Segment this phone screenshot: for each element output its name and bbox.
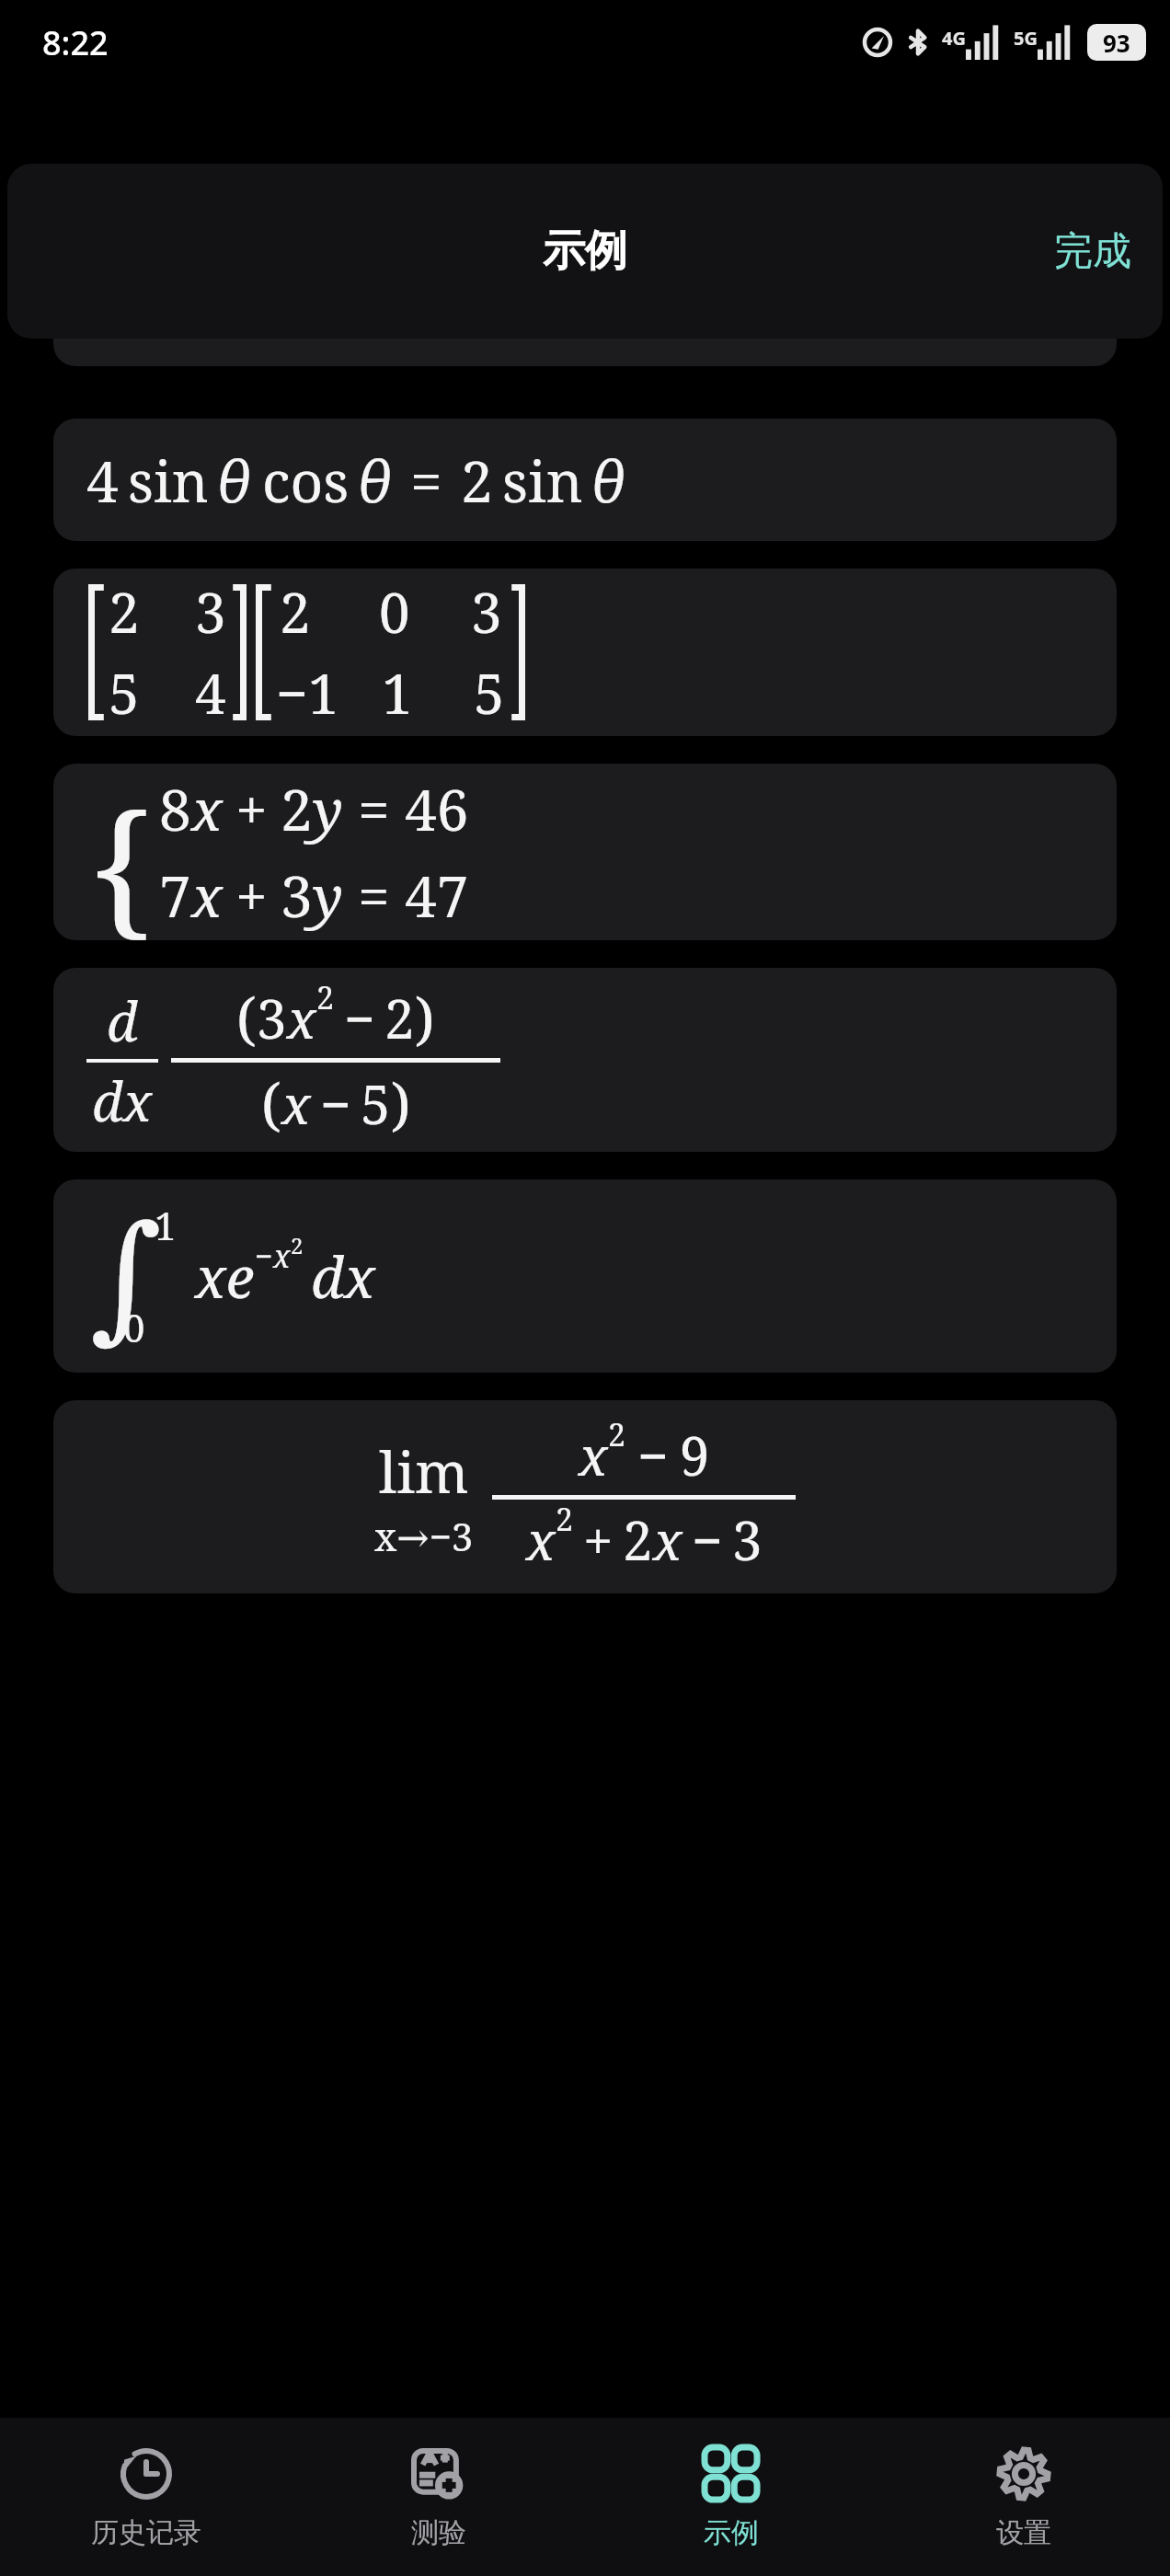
staticText: sin: [128, 442, 209, 519]
staticText: =: [358, 857, 390, 934]
staticText: 示例: [543, 224, 627, 278]
staticText: 8:22: [42, 20, 109, 65]
staticText: d: [107, 984, 138, 1057]
staticText: 47: [405, 857, 469, 934]
staticText: −: [692, 1503, 723, 1576]
staticText: x: [653, 1503, 682, 1576]
staticText: xe: [195, 1237, 255, 1315]
staticText: x: [526, 1503, 556, 1576]
staticText: 2: [281, 770, 313, 847]
staticText: lim: [379, 1432, 469, 1510]
staticText: −: [320, 1067, 351, 1140]
button[interactable]: ∫: [53, 1179, 1117, 1373]
staticText: 9: [680, 1419, 710, 1491]
other: Settings: [995, 2445, 1052, 2502]
staticText: 设置: [996, 2515, 1051, 2550]
other: Examples: [703, 2445, 760, 2502]
button[interactable]: Settings: [877, 2438, 1170, 2558]
staticText: +: [583, 1503, 614, 1576]
button[interactable]: d: [53, 968, 1117, 1152]
staticText: 3: [257, 982, 287, 1054]
staticText: y: [313, 857, 343, 934]
staticText: ∫: [90, 1196, 163, 1357]
staticText: (: [236, 979, 257, 1056]
staticText: −: [255, 1235, 273, 1277]
staticText: +: [235, 857, 268, 934]
staticText: y: [313, 770, 343, 847]
staticText: 2: [556, 1498, 574, 1540]
staticText: 3: [195, 574, 226, 650]
staticText: dx: [311, 1237, 375, 1315]
staticText: −1: [276, 655, 339, 730]
staticText: x: [273, 1235, 291, 1277]
other: Quiz: [410, 2445, 467, 2502]
staticText: 历史记录: [91, 2515, 201, 2550]
button[interactable]: 完成: [1023, 205, 1163, 298]
staticText: x: [191, 770, 223, 847]
staticText: 2: [461, 442, 493, 519]
staticText: 3: [281, 857, 313, 934]
staticText: 2: [109, 574, 140, 650]
staticText: 0: [123, 1301, 145, 1353]
staticText: 46: [405, 770, 469, 847]
staticText: 1: [155, 1199, 177, 1251]
staticText: 3: [471, 574, 502, 650]
staticText: 5: [474, 655, 505, 730]
staticText: 2: [280, 574, 311, 650]
staticText: x: [191, 857, 223, 934]
staticText: =: [358, 770, 390, 847]
staticText: 3: [732, 1503, 763, 1576]
staticText: 示例: [704, 2515, 759, 2550]
staticText: 8: [159, 770, 191, 847]
staticText: 5: [109, 655, 140, 730]
staticText: 2: [291, 1230, 304, 1260]
staticText: 4: [195, 655, 226, 730]
staticText: x: [579, 1419, 608, 1491]
staticText: cos: [262, 442, 350, 519]
staticText: =: [410, 442, 442, 519]
staticText: +: [235, 770, 268, 847]
staticText: sin: [502, 442, 583, 519]
staticText: 7: [159, 857, 191, 934]
staticText: x→−3: [374, 1510, 474, 1562]
button[interactable]: {: [53, 764, 1117, 940]
staticText: 2: [623, 1503, 653, 1576]
button[interactable]: Quiz: [292, 2438, 585, 2558]
staticText: −: [344, 982, 375, 1054]
staticText: 完成: [1054, 227, 1131, 276]
staticText: x: [287, 982, 316, 1054]
staticText: 1: [382, 655, 413, 730]
staticText: θ: [591, 442, 625, 519]
staticText: 93: [1103, 27, 1130, 59]
staticText: (: [261, 1064, 281, 1142]
staticText: 2: [608, 1413, 626, 1455]
staticText: −: [637, 1419, 669, 1491]
staticText: 2: [384, 982, 415, 1054]
staticText: 4: [86, 442, 119, 519]
button[interactable]: 2: [53, 569, 1117, 736]
other: History: [118, 2445, 175, 2502]
staticText: dx: [92, 1064, 153, 1137]
staticText: x: [281, 1067, 311, 1140]
staticText: 4G: [942, 26, 966, 51]
staticText: θ: [357, 442, 392, 519]
button[interactable]: lim: [53, 1400, 1117, 1593]
button[interactable]: 4: [53, 419, 1117, 541]
staticText: ): [415, 979, 435, 1056]
staticText: {: [90, 764, 154, 940]
staticText: 2: [316, 976, 335, 1018]
staticText: 0: [379, 574, 410, 650]
staticText: 5: [361, 1067, 391, 1140]
button[interactable]: Examples: [585, 2438, 877, 2558]
staticText: 测验: [411, 2515, 466, 2550]
button[interactable]: History: [0, 2438, 292, 2558]
staticText: ): [391, 1064, 411, 1142]
staticText: 5G: [1014, 26, 1038, 51]
staticText: θ: [216, 442, 251, 519]
